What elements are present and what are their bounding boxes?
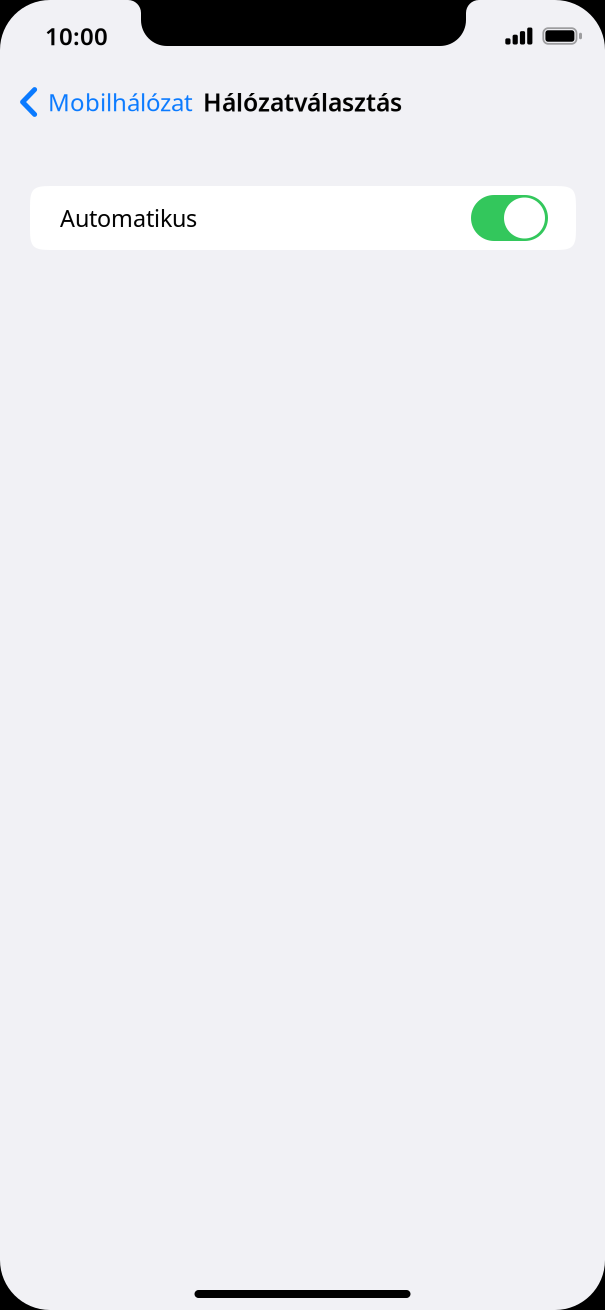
staticText: Automatikus [60, 202, 197, 234]
staticText: 10:00 [45, 20, 108, 52]
staticText: Hálózatválasztás [203, 85, 402, 119]
button[interactable]: be [30, 186, 576, 250]
staticText: Mobilhálózat [48, 86, 193, 118]
button[interactable]: Vissza: Mobilhálózat [0, 78, 195, 126]
